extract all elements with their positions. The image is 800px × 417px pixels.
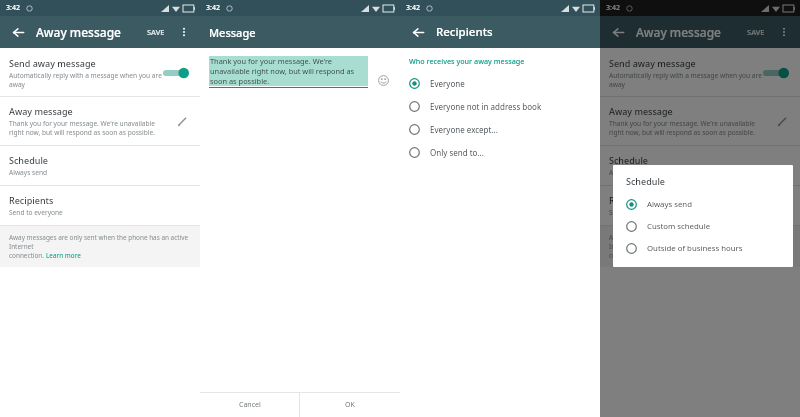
button[interactable]: Cancel (200, 393, 299, 417)
staticText: Cancel (239, 400, 261, 410)
staticText: Everyone (430, 78, 465, 89)
staticText: 3:42 (406, 3, 420, 13)
staticText: Away messages are only sent when the pho… (9, 233, 191, 251)
button[interactable]: SAVE (744, 27, 768, 37)
button[interactable]: Everyone (400, 72, 600, 95)
staticText: Everyone except... (430, 124, 498, 135)
button[interactable]: Learn more (46, 251, 81, 260)
staticText: Schedule (9, 154, 48, 166)
staticText: Away message (9, 105, 73, 117)
button[interactable]: Everyone not in address book (400, 95, 600, 118)
staticText: Away message (609, 105, 673, 117)
staticText: SAVE (747, 27, 765, 37)
button[interactable]: More options (776, 24, 792, 40)
staticText: Always send (609, 168, 648, 177)
staticText: Recipients (609, 194, 654, 206)
staticText: Send away message (9, 57, 96, 69)
button[interactable]: Recipients (600, 186, 800, 225)
staticText: Only send to... (430, 147, 484, 158)
button[interactable]: Away message (0, 97, 200, 145)
staticText: Always send (647, 199, 692, 210)
button[interactable]: Outside of business hours (613, 237, 793, 259)
staticText: Away message (636, 24, 721, 40)
button[interactable]: Emoji (375, 72, 391, 88)
button[interactable]: Schedule (600, 146, 800, 185)
button[interactable]: Away message (600, 97, 800, 145)
button[interactable]: Back (608, 22, 628, 42)
button[interactable]: Only send to... (400, 141, 600, 164)
staticText: Message (209, 25, 256, 40)
staticText: Thank you for your message. We're unavai… (210, 56, 367, 86)
staticText: Custom schedule (647, 221, 711, 232)
staticText: Always send (9, 168, 48, 177)
staticText: Automatically reply with a message when … (9, 71, 163, 89)
button[interactable]: Back (408, 22, 428, 42)
staticText: Who receives your away message (409, 56, 525, 66)
staticText: connection. (609, 251, 646, 260)
staticText: Outside of business hours (647, 243, 743, 254)
staticText: Everyone not in address book (430, 101, 542, 112)
button[interactable]: Edit (173, 112, 191, 130)
staticText: Automatically reply with a message when … (609, 71, 763, 89)
staticText: SAVE (147, 27, 165, 37)
staticText: Send to everyone (609, 208, 663, 217)
staticText: Away message (36, 24, 121, 40)
staticText: Learn more (46, 251, 81, 260)
button[interactable]: Recipients (0, 186, 200, 225)
staticText: Recipients (9, 194, 54, 206)
button[interactable]: Edit (773, 112, 791, 130)
button[interactable]: Send away message (600, 48, 800, 96)
staticText: Thank you for your message. We're unavai… (9, 119, 167, 137)
button[interactable]: Back (8, 22, 28, 42)
staticText: Away messages are only sent when the pho… (609, 233, 791, 251)
button[interactable]: SAVE (144, 27, 168, 37)
button[interactable]: Custom schedule (613, 215, 793, 237)
staticText: connection. (9, 251, 46, 260)
button[interactable]: Everyone except... (400, 118, 600, 141)
staticText: Thank you for your message. We're unavai… (609, 119, 767, 137)
staticText: 3:42 (606, 3, 620, 13)
button[interactable]: Send away message (0, 48, 200, 96)
staticText: Schedule (626, 175, 665, 187)
button[interactable]: Schedule (0, 146, 200, 185)
staticText: Send away message (609, 57, 696, 69)
button[interactable]: More options (176, 24, 192, 40)
button[interactable]: OK (300, 393, 400, 417)
staticText: Send to everyone (9, 208, 63, 217)
staticText: 3:42 (206, 3, 220, 13)
staticText: 3:42 (6, 3, 20, 13)
staticText: OK (345, 400, 355, 410)
button[interactable]: Always send (613, 193, 793, 215)
staticText: Recipients (436, 24, 493, 40)
staticText: Schedule (609, 154, 648, 166)
